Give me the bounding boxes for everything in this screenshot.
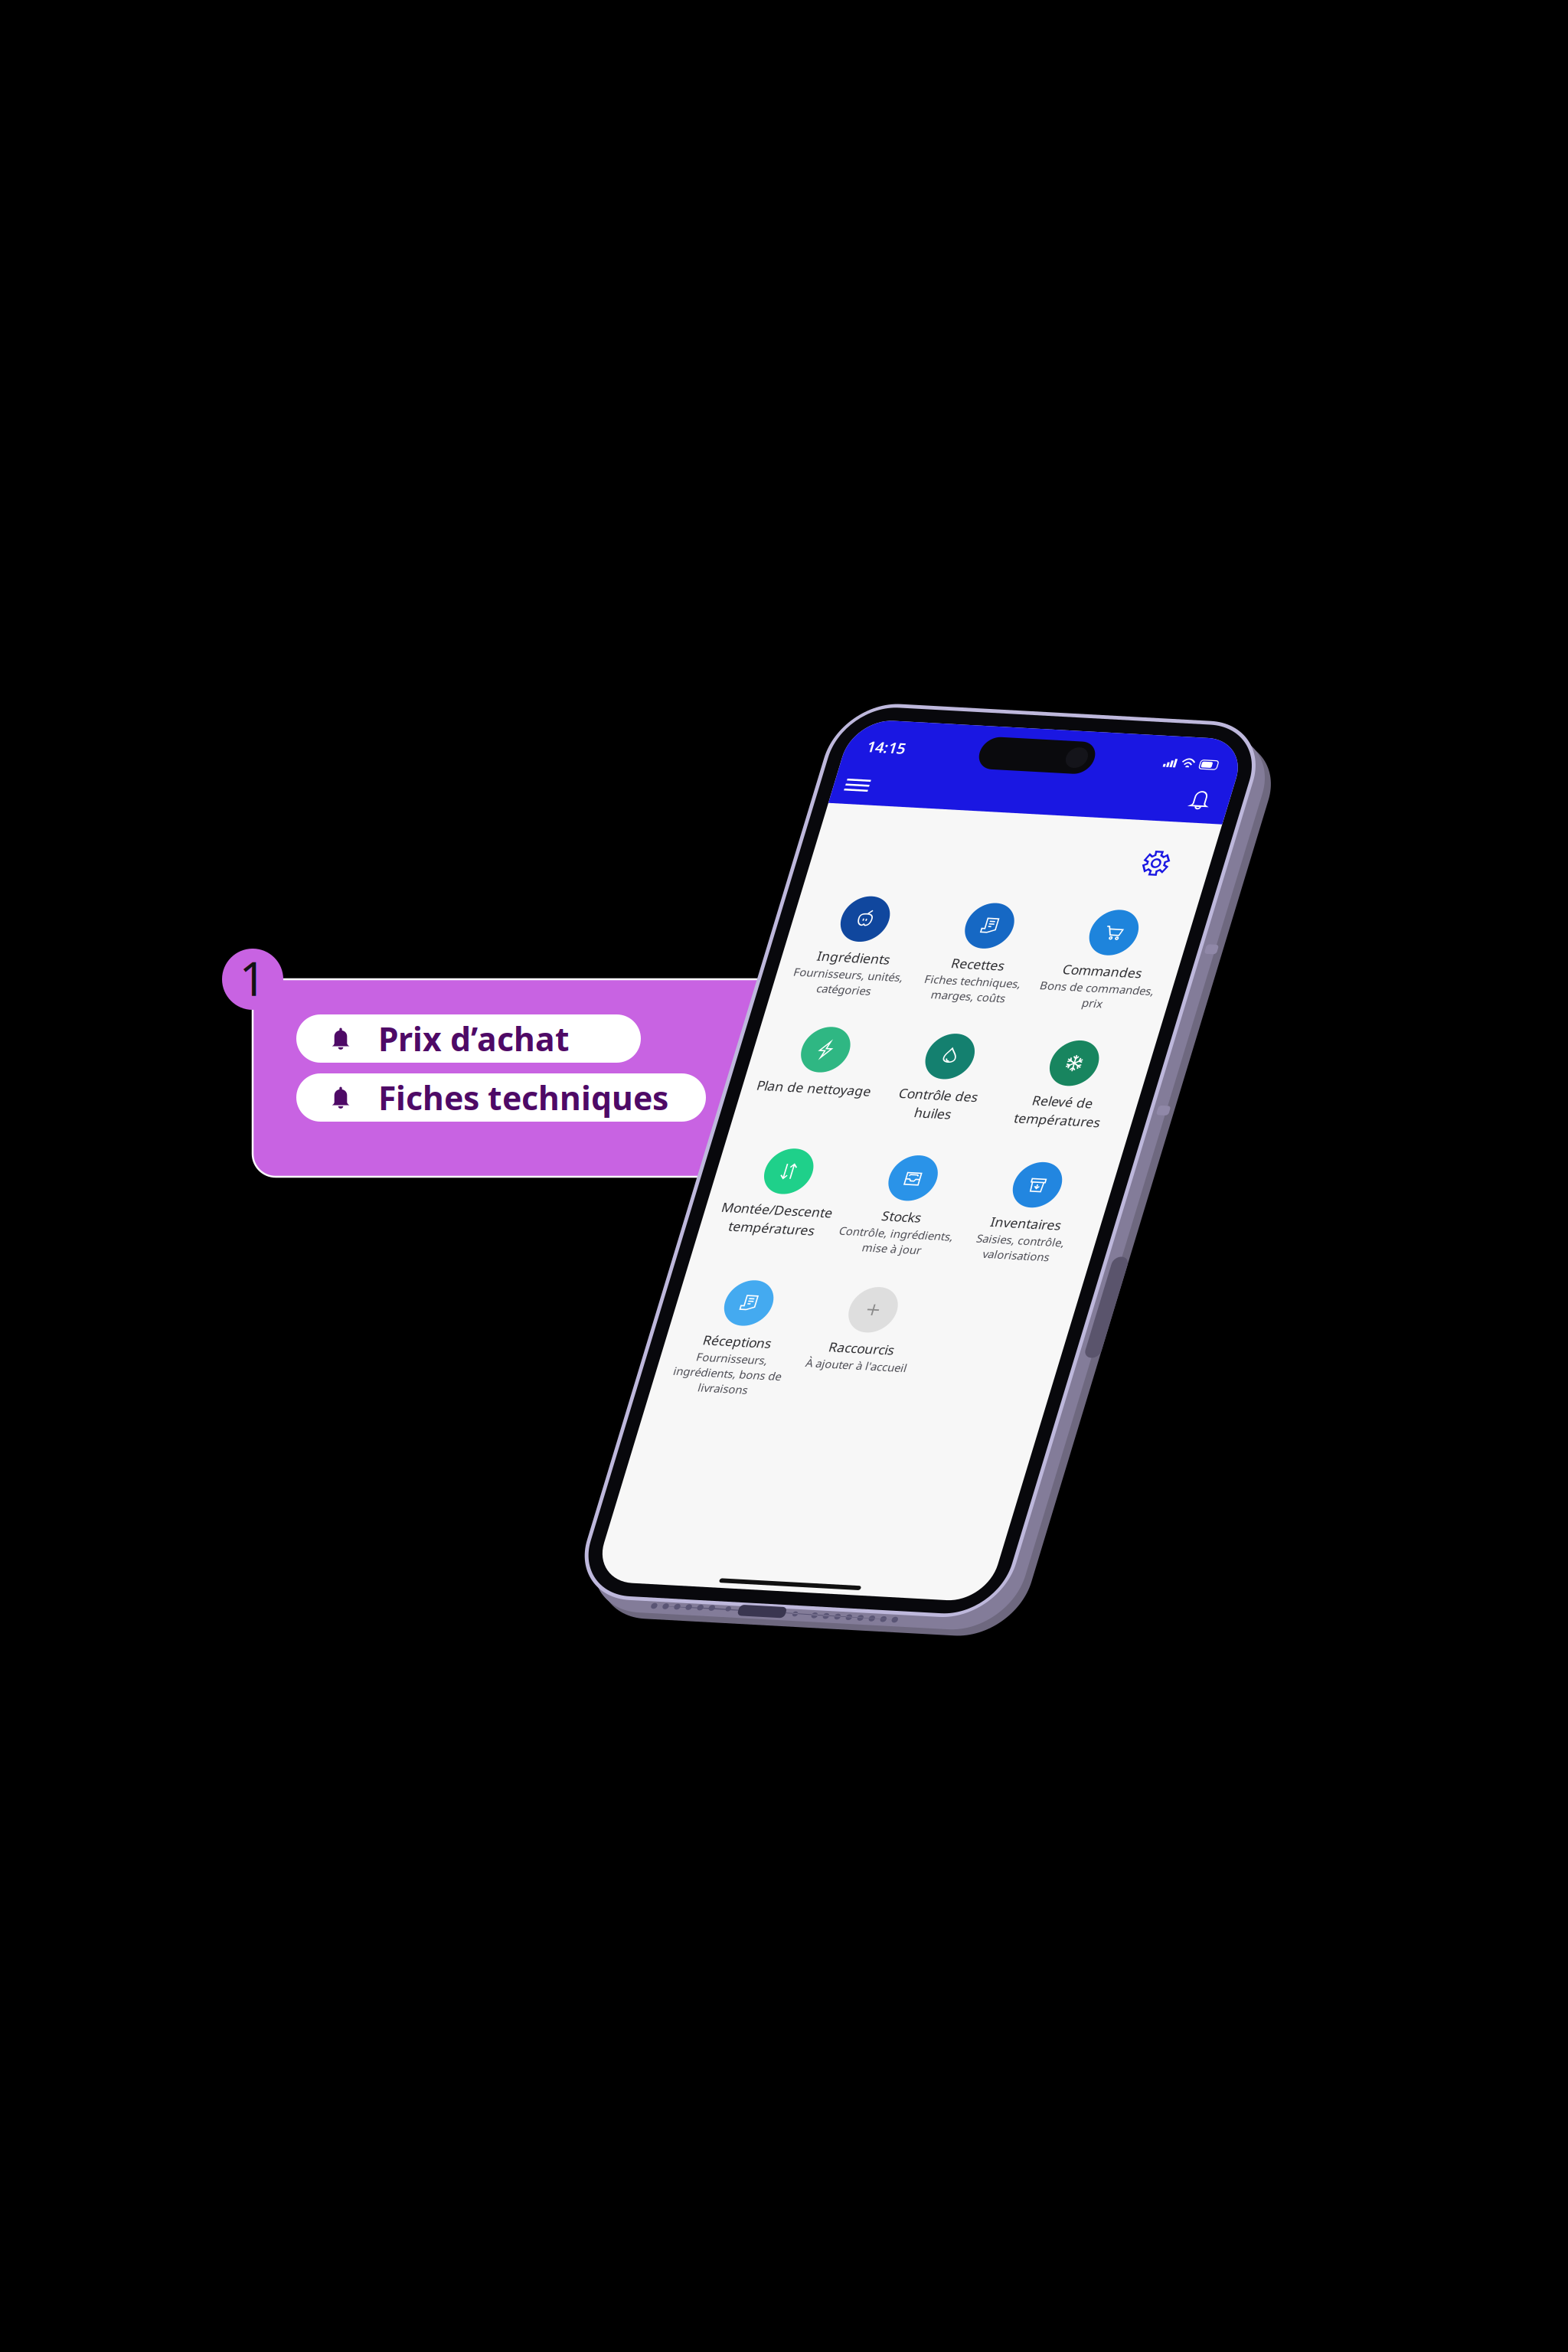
button[interactable]: Notifications: [1202, 764, 1236, 802]
staticText: Ingrédients: [889, 955, 961, 973]
button[interactable]: Raccourcis: [987, 1302, 1111, 2203]
button[interactable]: Réceptions: [863, 1302, 987, 2203]
staticText: Raccourcis: [1017, 1357, 1082, 1374]
staticText: Réceptions: [891, 1357, 959, 1374]
button[interactable]: Contrôle des huiles: [987, 1037, 1111, 1938]
staticText: Saisies, contrôle, valorisations: [1130, 1238, 1218, 1269]
staticText: Inventaires: [1139, 1219, 1209, 1237]
button[interactable]: Ingrédients: [863, 900, 987, 1801]
staticText: Prix d’achat: [378, 1017, 570, 1060]
staticText: Fiches techniques, marges, coûts: [1001, 975, 1098, 1005]
button[interactable]: Recettes: [987, 900, 1111, 1801]
button[interactable]: Relevé de températures: [1112, 1037, 1236, 1938]
button[interactable]: Fiches techniques: [296, 1073, 706, 1122]
button[interactable]: Plan de nettoyage: [863, 1037, 987, 1938]
button[interactable]: Menu: [856, 772, 898, 802]
staticText: Montée/Descente températures: [869, 1219, 980, 1256]
staticText: Fiches techniques: [378, 1076, 668, 1119]
staticText: Fournisseurs, unités, catégories: [870, 975, 980, 1005]
button[interactable]: Stocks: [987, 1164, 1111, 2065]
staticText: Contrôle des huiles: [1010, 1092, 1089, 1129]
button[interactable]: Réglages: [1173, 829, 1216, 872]
staticText: Plan de nettoyage: [868, 1092, 982, 1110]
button[interactable]: Montée/Descente températures: [863, 1164, 987, 2065]
staticText: À ajouter à l'accueil: [999, 1376, 1100, 1391]
staticText: Contrôle, ingrédients, mise à jour: [992, 1238, 1106, 1269]
staticText: Commandes: [1134, 955, 1213, 973]
staticText: Stocks: [1030, 1219, 1069, 1237]
button[interactable]: Commandes: [1112, 900, 1236, 1801]
staticText: Bons de commandes, prix: [1117, 975, 1231, 1005]
staticText: Relevé de températures: [1131, 1092, 1217, 1129]
button[interactable]: Prix d’achat: [296, 1014, 641, 1063]
staticText: Recettes: [1023, 955, 1076, 973]
staticText: 14:15: [875, 736, 914, 756]
button[interactable]: Inventaires: [1112, 1164, 1236, 2065]
staticText: 1: [239, 947, 266, 1009]
